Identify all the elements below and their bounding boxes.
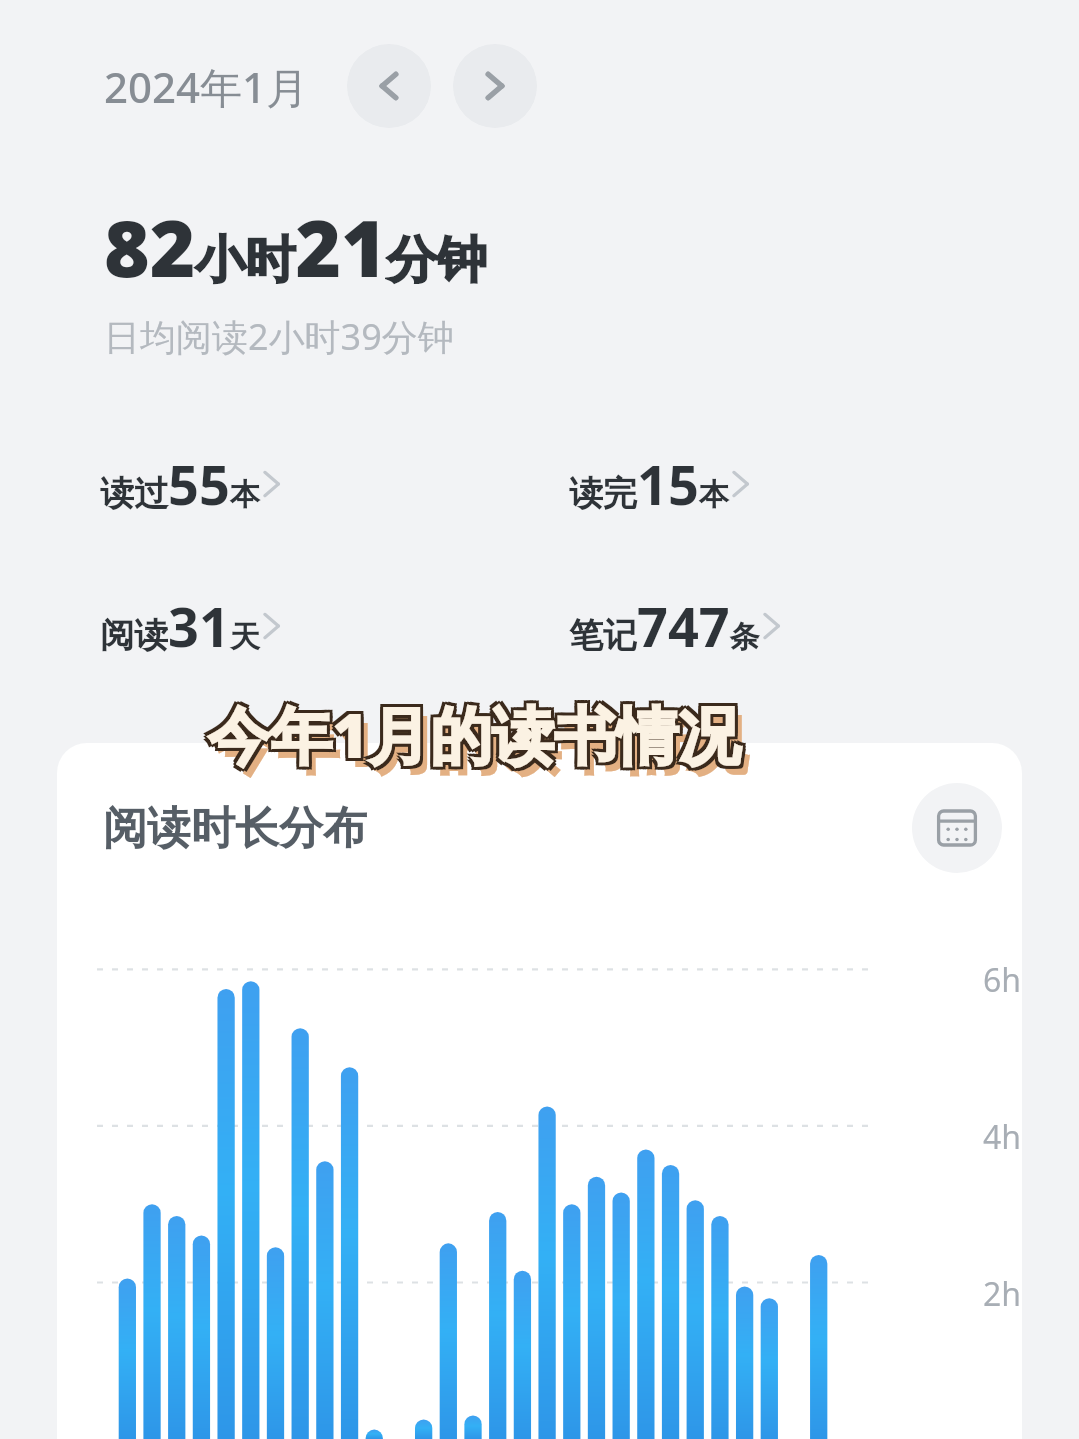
staticText: 日均阅读2小时39分钟 — [104, 312, 454, 361]
staticText: 读过55本 — [100, 447, 260, 521]
button[interactable]: 读过55本 — [100, 447, 569, 521]
staticText: 阅读时长分布 — [103, 801, 367, 856]
staticText: 6h — [983, 958, 1022, 1002]
staticText: 今年1月的读书情况 — [211, 692, 744, 777]
staticText: 2024年1月 — [104, 58, 309, 115]
staticText: 今年1月的读书情况 — [215, 701, 748, 786]
staticText: 今年1月的读书情况 — [205, 689, 738, 774]
button[interactable]: Select date — [912, 783, 1002, 873]
staticText: 今年1月的读书情况 — [211, 695, 744, 780]
staticText: 4h — [983, 1115, 1022, 1159]
button[interactable]: Previous month — [347, 44, 431, 128]
staticText: 今年1月的读书情况 — [205, 695, 738, 780]
staticText: 2h — [983, 1272, 1022, 1316]
staticText: 82小时21分钟 — [104, 194, 487, 300]
staticText: 今年1月的读书情况 — [208, 689, 741, 774]
staticText: 笔记747条 — [569, 589, 760, 663]
staticText: 读完15本 — [569, 447, 729, 521]
staticText: 今年1月的读书情况 — [205, 692, 738, 777]
staticText: 今年1月的读书情况 — [211, 689, 744, 774]
staticText: 阅读31天 — [100, 589, 260, 663]
button[interactable]: 读完15本 — [569, 447, 1039, 521]
button[interactable]: 笔记747条 — [569, 589, 1039, 663]
staticText: 今年1月的读书情况 — [208, 695, 741, 780]
staticText: 今年1月的读书情况 — [208, 692, 741, 777]
button[interactable]: 阅读31天 — [100, 589, 569, 663]
button[interactable]: Next month — [453, 44, 537, 128]
